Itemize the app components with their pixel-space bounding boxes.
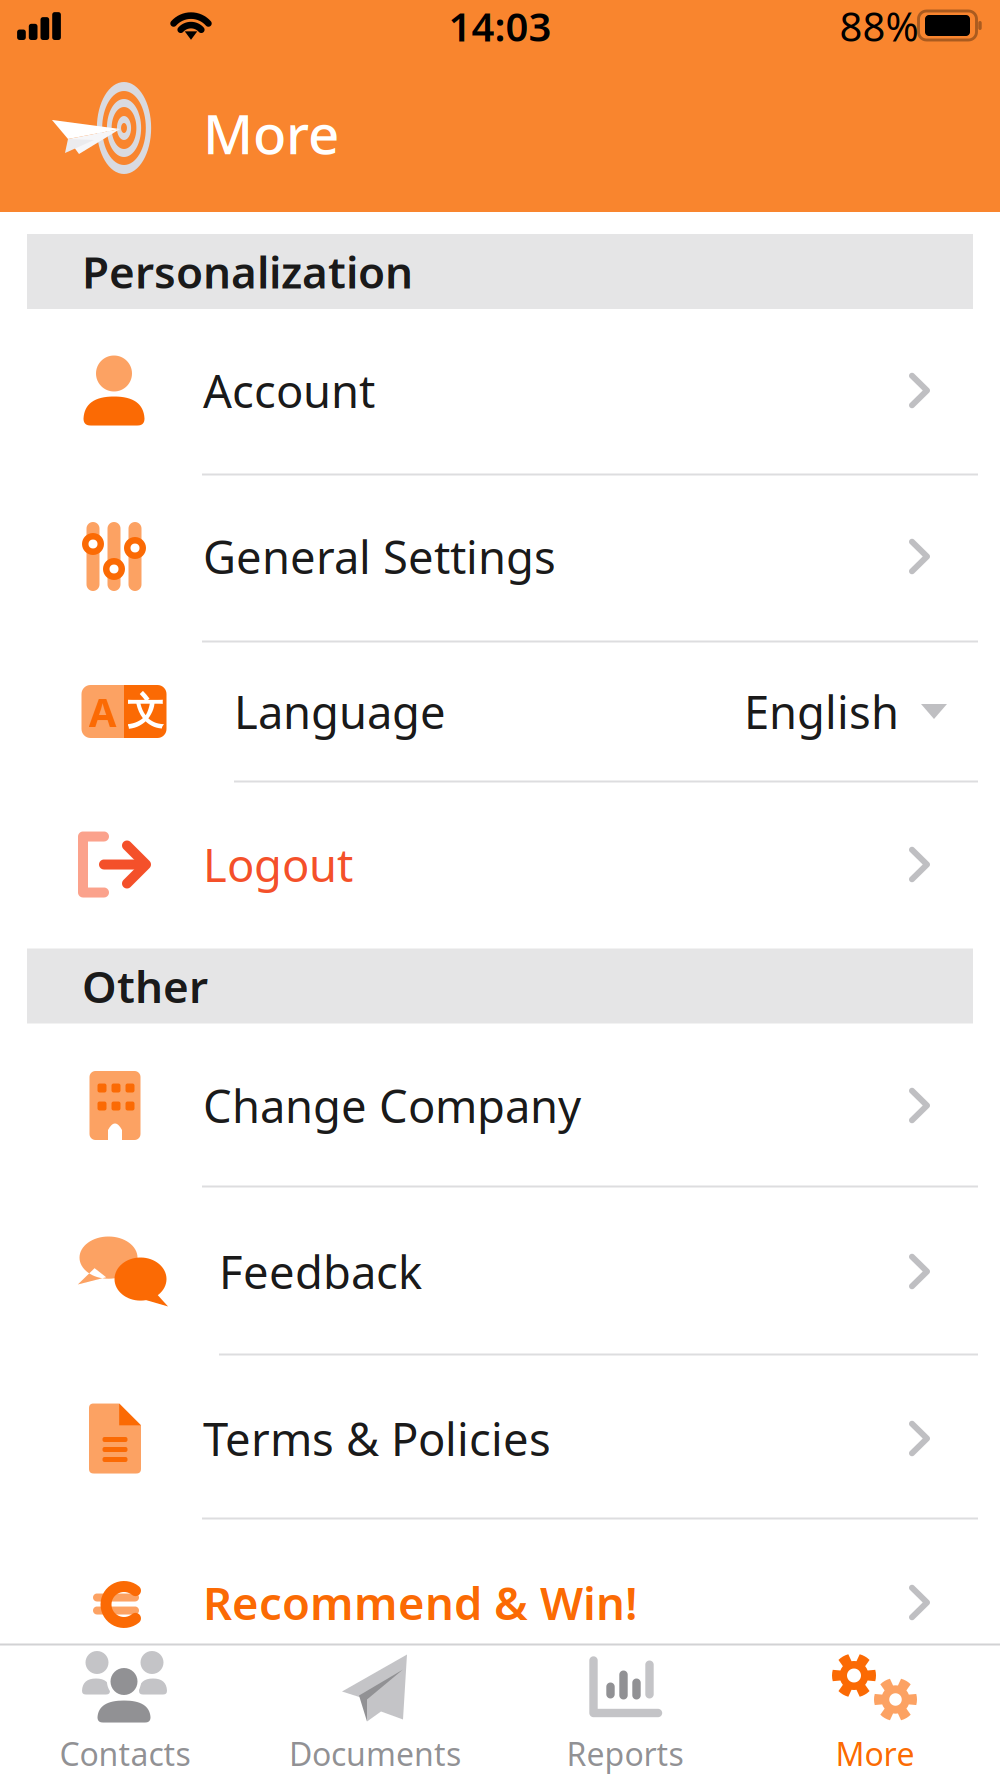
staticText: Contacts (59, 1732, 190, 1775)
staticText: Documents (289, 1732, 461, 1775)
button[interactable]: A (0, 212, 1000, 1643)
staticText: Feedback (219, 1241, 422, 1302)
staticText: English (744, 681, 899, 742)
button[interactable]: More (750, 1643, 1000, 1778)
button[interactable]: Feedback (0, 212, 1000, 1643)
button[interactable]: General Settings (0, 212, 1000, 1643)
button[interactable]: Reports (500, 1643, 750, 1778)
staticText: Logout (203, 834, 353, 895)
staticText: Account (203, 360, 375, 421)
staticText: Terms & Policies (203, 1408, 551, 1469)
staticText: Change Company (203, 1075, 581, 1136)
staticText: Other (82, 957, 208, 1015)
staticText: 88% (839, 0, 918, 52)
button[interactable]: Recommend & Win! (0, 212, 1000, 1643)
button[interactable]: Account (0, 212, 1000, 1643)
button[interactable]: Terms & Policies (0, 212, 1000, 1643)
staticText: More (835, 1732, 914, 1775)
button[interactable]: Contacts (0, 1643, 250, 1778)
button[interactable]: Logout (0, 212, 1000, 1643)
button[interactable]: Change Company (0, 212, 1000, 1643)
staticText: Personalization (82, 242, 413, 301)
staticText: Reports (566, 1732, 683, 1775)
staticText: 文 (127, 689, 164, 734)
staticText: Language (234, 681, 446, 742)
staticText: General Settings (203, 526, 556, 587)
staticText: More (203, 97, 339, 169)
staticText: Recommend & Win! (203, 1572, 638, 1633)
staticText: 14:03 (448, 0, 551, 52)
button[interactable]: Documents (250, 1643, 500, 1778)
staticText: A (89, 685, 117, 738)
